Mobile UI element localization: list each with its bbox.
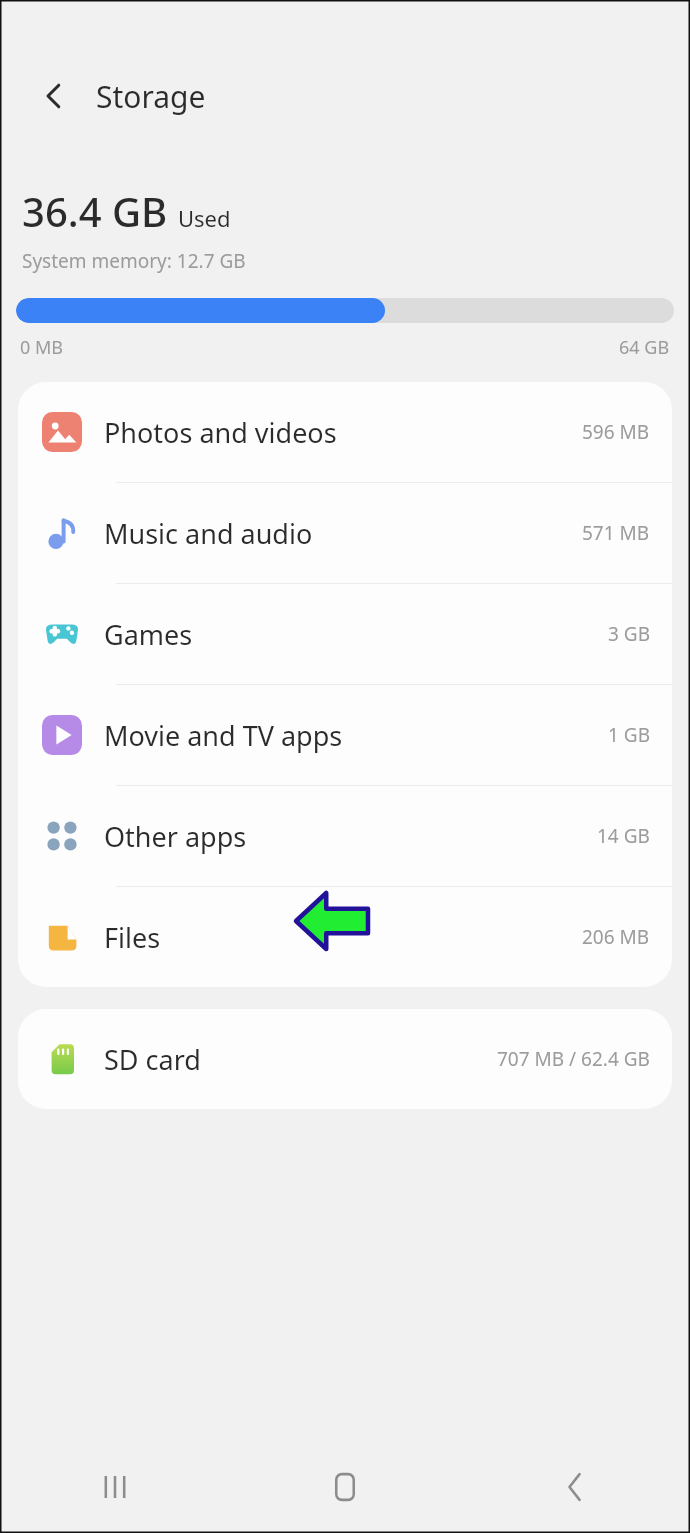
staticText: 36.4 GB	[22, 184, 168, 238]
button[interactable]: Home	[230, 1440, 460, 1533]
staticText: Storage	[96, 76, 206, 117]
button[interactable]: Games	[18, 584, 672, 684]
button[interactable]: Other apps	[18, 786, 672, 886]
staticText: Used	[178, 203, 231, 233]
button[interactable]: Back	[460, 1440, 690, 1533]
button[interactable]: Music and audio	[18, 483, 672, 583]
staticText: 206 MB	[582, 924, 650, 950]
staticText: Music and audio	[104, 515, 313, 552]
staticText: 571 MB	[582, 520, 650, 546]
staticText: Photos and videos	[104, 414, 337, 451]
button[interactable]: Recent apps	[0, 1440, 230, 1533]
button[interactable]: Photos and videos	[18, 382, 672, 482]
staticText: Other apps	[104, 818, 247, 855]
staticText: Files	[104, 919, 161, 956]
staticText: 707 MB / 62.4 GB	[497, 1046, 650, 1072]
staticText: 596 MB	[582, 419, 650, 445]
staticText: 64 GB	[619, 335, 670, 360]
staticText: 14 GB	[597, 823, 650, 849]
button[interactable]: Movie and TV apps	[18, 685, 672, 785]
staticText: System memory: 12.7 GB	[22, 248, 246, 274]
staticText: Movie and TV apps	[104, 717, 343, 754]
button[interactable]: Back	[26, 68, 82, 124]
staticText: 3 GB	[608, 621, 650, 647]
staticText: 1 GB	[608, 722, 650, 748]
staticText: Games	[104, 616, 193, 653]
staticText: 0 MB	[20, 335, 64, 360]
staticText: SD card	[104, 1041, 201, 1078]
button[interactable]: SD card	[18, 1009, 672, 1109]
button[interactable]: Files	[18, 887, 672, 987]
